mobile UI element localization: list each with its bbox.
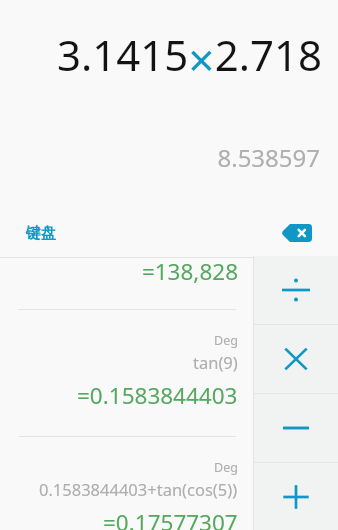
button[interactable]: 键盘 [0,214,82,253]
button[interactable]: Plus [254,463,338,530]
staticText: 键盘 [26,224,56,243]
staticText: Deg [214,459,238,476]
staticText: 3.1415×2.718 [0,26,322,91]
button[interactable]: Deg [0,310,253,436]
staticText: Deg [214,332,238,349]
staticText: =0.17577307 [103,507,238,530]
button[interactable]: Deg [0,437,253,530]
staticText: 8.538597 [0,141,320,174]
staticText: =0.1583844403 [77,380,238,411]
button[interactable]: Minus [254,394,338,462]
button[interactable]: Divide [254,256,338,324]
staticText: 0.1583844403+tan(cos(5)) [39,478,238,500]
button[interactable]: Backspace [254,210,338,256]
button[interactable]: =138,828 [0,256,253,309]
button[interactable]: Multiply [254,325,338,393]
staticText: tan(9) [193,351,238,373]
staticText: =138,828 [0,256,238,287]
